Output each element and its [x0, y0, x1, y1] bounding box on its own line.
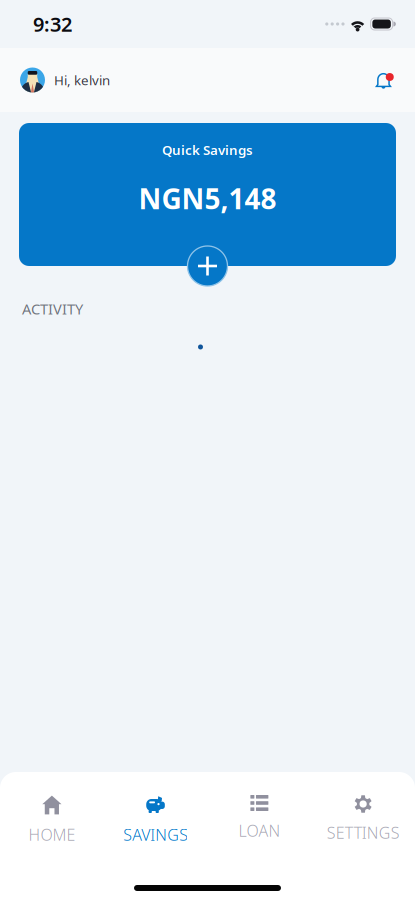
button[interactable]: SAVINGS	[104, 772, 208, 862]
staticText: 9:32	[33, 11, 72, 37]
button[interactable]: HOME	[0, 772, 104, 862]
button[interactable]: Hi, kelvin	[20, 67, 110, 92]
staticText: Quick Savings	[162, 141, 253, 159]
staticText: NGN5,148	[138, 180, 276, 217]
button[interactable]: LOAN	[207, 772, 311, 862]
staticText: Hi, kelvin	[54, 71, 110, 89]
staticText: HOME	[28, 824, 75, 845]
button[interactable]: SETTINGS	[311, 772, 415, 862]
button[interactable]: Notifications	[376, 70, 394, 89]
staticText: LOAN	[238, 820, 280, 841]
staticText: SAVINGS	[123, 824, 188, 845]
staticText: ACTIVITY	[22, 299, 83, 318]
button[interactable]: Add savings	[187, 246, 227, 286]
staticText: SETTINGS	[327, 822, 400, 843]
